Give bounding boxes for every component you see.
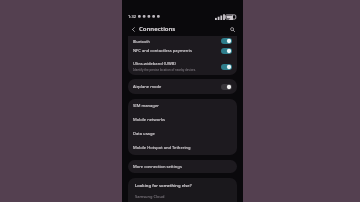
button[interactable]: Search — [227, 24, 237, 34]
staticText: Airplane mode — [133, 84, 162, 90]
staticText: Mobile networks — [133, 117, 166, 123]
staticText: SIM manager — [133, 103, 159, 109]
button[interactable]: Airplane mode — [128, 79, 237, 94]
staticText: Data usage — [133, 131, 155, 137]
staticText: More connection settings — [133, 164, 182, 170]
staticText: 1:32 — [128, 14, 136, 19]
button[interactable]: SIM manager — [128, 99, 237, 113]
staticText: NFC and contactless payments — [133, 48, 192, 54]
button[interactable]: More connection settings — [128, 160, 237, 173]
staticText: Mobile Hotspot and Tethering — [133, 145, 191, 151]
button[interactable]: Samsung Cloud — [135, 194, 237, 199]
button[interactable]: Mobile Hotspot and Tethering — [128, 141, 237, 155]
button[interactable]: Data usage — [128, 127, 237, 141]
button[interactable]: Ultra-wideband (UWB) — [128, 58, 237, 75]
staticText: Identify the precise location of nearby … — [133, 68, 196, 72]
staticText: Connections — [139, 25, 176, 33]
button[interactable]: Bluetooth — [128, 36, 237, 44]
button[interactable]: Back — [128, 24, 138, 34]
button[interactable]: NFC and contactless payments — [128, 44, 237, 58]
staticText: Ultra-wideband (UWB) — [133, 61, 176, 67]
button[interactable]: Mobile networks — [128, 113, 237, 127]
staticText: Bluetooth — [133, 39, 150, 44]
staticText: Looking for something else? — [135, 183, 192, 189]
staticText: Samsung Cloud — [135, 194, 165, 199]
